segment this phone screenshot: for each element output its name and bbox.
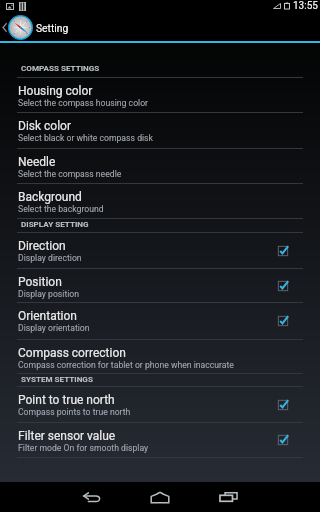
staticText: 13:55 bbox=[293, 0, 318, 12]
staticText: Point to true north bbox=[18, 393, 115, 407]
button[interactable]: Compass correction bbox=[0, 340, 320, 374]
button[interactable]: Position bbox=[0, 269, 320, 303]
button[interactable]: Toggle bbox=[273, 276, 293, 296]
button[interactable]: Toggle bbox=[273, 395, 293, 415]
staticText: Filter mode On for smooth display bbox=[18, 443, 149, 453]
staticText: Display direction bbox=[18, 253, 82, 263]
button[interactable]: Home bbox=[143, 484, 177, 510]
staticText: Compass points to true north bbox=[18, 407, 131, 417]
staticText: Display orientation bbox=[18, 323, 90, 333]
staticText: Direction bbox=[18, 239, 66, 253]
staticText: Needle bbox=[18, 155, 56, 169]
staticText: Select the compass housing color bbox=[18, 98, 149, 108]
button[interactable]: Recent apps bbox=[211, 484, 245, 510]
staticText: SYSTEM SETTINGS bbox=[21, 374, 93, 383]
staticText: Background bbox=[18, 190, 82, 204]
staticText: Housing color bbox=[18, 84, 93, 98]
staticText: Disk color bbox=[18, 119, 71, 133]
button[interactable]: Background bbox=[0, 184, 320, 219]
button[interactable]: Point to true north bbox=[0, 387, 320, 423]
staticText: Select the background bbox=[18, 204, 104, 214]
button[interactable]: Navigate up bbox=[0, 15, 33, 40]
staticText: Position bbox=[18, 275, 62, 289]
button[interactable]: Direction bbox=[0, 233, 320, 269]
staticText: COMPASS SETTINGS bbox=[21, 63, 100, 72]
staticText: Orientation bbox=[18, 309, 77, 323]
button[interactable]: Toggle bbox=[273, 430, 293, 450]
staticText: Compass correction for tablet or phone w… bbox=[18, 360, 234, 370]
button[interactable]: Back bbox=[75, 484, 109, 510]
button[interactable]: Filter sensor value bbox=[0, 423, 320, 458]
staticText: Filter sensor value bbox=[18, 429, 116, 443]
button[interactable]: Orientation bbox=[0, 303, 320, 340]
staticText: Select black or white compass disk bbox=[18, 133, 153, 143]
button[interactable]: Needle bbox=[0, 149, 320, 184]
staticText: Setting bbox=[36, 22, 69, 34]
staticText: DISPLAY SETTING bbox=[21, 219, 89, 228]
button[interactable]: Toggle bbox=[273, 241, 293, 261]
staticText: Display position bbox=[18, 289, 80, 299]
button[interactable]: Toggle bbox=[273, 311, 293, 331]
staticText: Compass correction bbox=[18, 346, 126, 360]
staticText: Select the compass needle bbox=[18, 169, 122, 179]
button[interactable]: Disk color bbox=[0, 113, 320, 149]
button[interactable]: Housing color bbox=[0, 78, 320, 113]
